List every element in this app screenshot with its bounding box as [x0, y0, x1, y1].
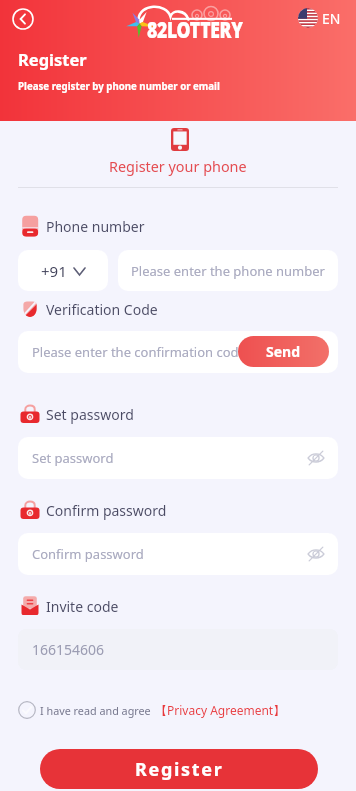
staticText: +91 [41, 261, 67, 281]
staticText: Register your phone [109, 157, 247, 177]
button[interactable]: Set password [18, 437, 338, 479]
button[interactable]: 166154606 [18, 629, 338, 670]
staticText: Register [135, 757, 224, 782]
staticText: I have read and agree [40, 703, 151, 718]
staticText: Invite code [46, 597, 119, 616]
staticText: Set password [32, 449, 114, 467]
button[interactable]: Please enter the phone number [118, 250, 338, 291]
staticText: Send [266, 342, 301, 361]
staticText: 166154606 [32, 640, 105, 659]
staticText: Phone number [46, 217, 145, 236]
button[interactable]: Back [12, 8, 34, 30]
other: Language [298, 8, 318, 28]
staticText: Please enter the confirmation code [32, 343, 246, 361]
staticText: Confirm password [46, 501, 167, 520]
staticText: 82LOTTERY [147, 14, 243, 44]
button[interactable]: I have read and agree [18, 700, 286, 720]
button[interactable]: Register [40, 749, 318, 789]
other: Show password [307, 449, 325, 467]
staticText: 【Privacy Agreement】 [155, 702, 286, 718]
other: Show password [307, 545, 325, 563]
button[interactable]: Please enter the confirmation code [18, 331, 338, 373]
staticText: Register [18, 48, 87, 70]
staticText: Set password [46, 405, 134, 424]
button[interactable]: Language [298, 8, 341, 28]
staticText: Confirm password [32, 545, 144, 563]
button[interactable]: +91 [18, 250, 108, 291]
staticText: EN [322, 9, 341, 28]
staticText: Please register by phone number or email [18, 80, 220, 93]
button[interactable]: Send [238, 336, 329, 367]
button[interactable]: Confirm password [18, 533, 338, 575]
staticText: Please enter the phone number [131, 262, 325, 280]
staticText: Verification Code [46, 300, 158, 319]
